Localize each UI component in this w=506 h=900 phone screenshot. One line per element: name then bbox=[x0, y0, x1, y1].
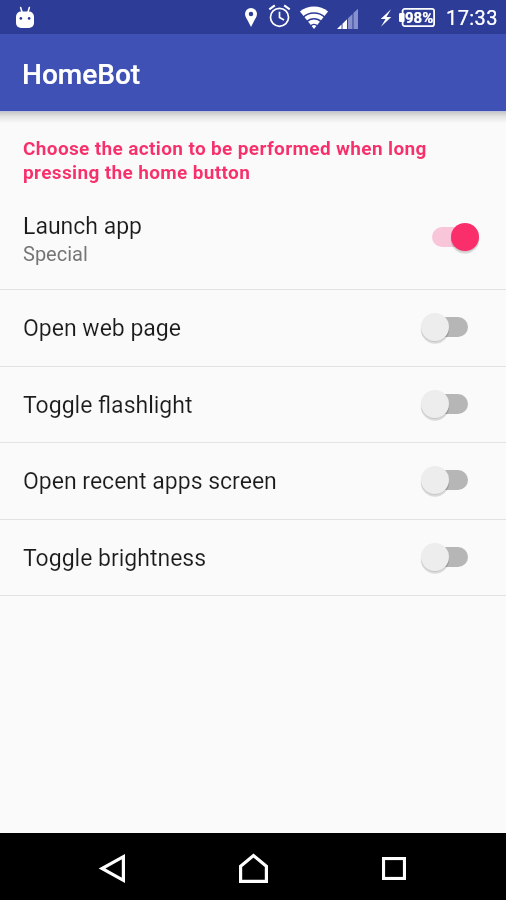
staticText: Launch app bbox=[23, 213, 143, 240]
staticText: Choose the action to be performed when l… bbox=[23, 137, 448, 184]
button[interactable]: Disabled bbox=[421, 463, 479, 497]
staticText: Open web page bbox=[23, 315, 181, 342]
button[interactable]: Toggle flashlight bbox=[0, 367, 506, 444]
button[interactable]: Enabled bbox=[421, 220, 479, 254]
button[interactable]: Disabled bbox=[421, 310, 479, 344]
button[interactable]: Home bbox=[227, 842, 279, 894]
staticText: Open recent apps screen bbox=[23, 468, 277, 495]
staticText: 98% bbox=[405, 9, 434, 27]
staticText: Toggle brightness bbox=[23, 545, 207, 572]
button[interactable]: Disabled bbox=[421, 387, 479, 421]
button[interactable]: Launch app bbox=[0, 196, 506, 290]
button[interactable]: Back bbox=[86, 842, 138, 894]
button[interactable]: Disabled bbox=[421, 540, 479, 574]
staticText: Toggle flashlight bbox=[23, 392, 193, 419]
button[interactable]: Open web page bbox=[0, 290, 506, 367]
staticText: 17:33 bbox=[446, 6, 498, 29]
button[interactable]: Recent apps bbox=[368, 842, 420, 894]
staticText: HomeBot bbox=[22, 58, 141, 91]
button[interactable]: Open recent apps screen bbox=[0, 443, 506, 520]
staticText: Special bbox=[23, 242, 88, 265]
button[interactable]: Toggle brightness bbox=[0, 520, 506, 597]
